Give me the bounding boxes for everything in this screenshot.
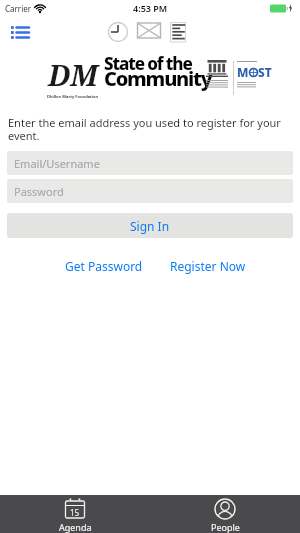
button[interactable]: People: [150, 495, 300, 533]
button[interactable]: Register Now: [170, 258, 246, 274]
staticText: 4:53 PM: [133, 2, 168, 14]
staticText: ST: [258, 64, 272, 80]
staticText: DM: [48, 55, 98, 94]
staticText: 15: [70, 507, 80, 518]
staticText: Enter the email address you used to regi…: [8, 115, 281, 143]
staticText: Sign In: [130, 218, 170, 234]
staticText: Community: [104, 65, 212, 92]
button[interactable]: 15: [0, 495, 150, 533]
staticText: Email/Username: [14, 156, 100, 171]
staticText: Carrier: [5, 3, 32, 14]
button[interactable]: [137, 22, 161, 42]
button[interactable]: [11, 26, 30, 39]
button[interactable]: Get Password: [65, 258, 143, 274]
button[interactable]: Sign In: [7, 213, 293, 238]
staticText: Agenda: [59, 521, 92, 533]
button[interactable]: Password: [7, 179, 293, 203]
staticText: Dhillon Marty Foundation: [47, 94, 99, 99]
staticText: M: [237, 64, 249, 80]
button[interactable]: [170, 22, 187, 43]
button[interactable]: Email/Username: [7, 151, 293, 175]
staticText: State of the: [104, 52, 192, 75]
staticText: People: [211, 521, 240, 533]
staticText: Password: [14, 184, 64, 199]
button[interactable]: [107, 21, 129, 43]
